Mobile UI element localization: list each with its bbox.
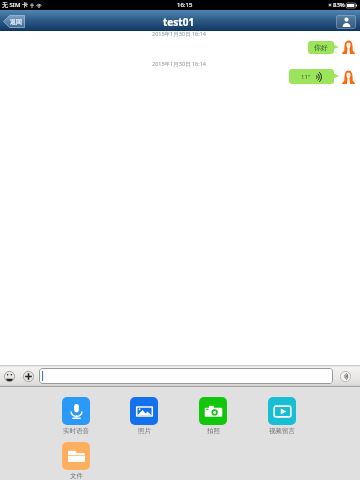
staticText: 拍照: [207, 427, 220, 435]
staticText: 实时语音: [63, 427, 89, 435]
staticText: 83%: [333, 1, 345, 9]
button[interactable]: Emoji: [4, 371, 15, 382]
button[interactable]: 照片: [114, 397, 174, 435]
button[interactable]: 拍照: [183, 397, 243, 435]
button[interactable]: Contacts: [336, 15, 356, 29]
staticText: 你好: [314, 43, 328, 52]
staticText: 11'': [301, 73, 311, 81]
staticText: test01: [163, 15, 195, 29]
staticText: 返回: [10, 18, 22, 26]
button[interactable]: 11'': [289, 69, 334, 84]
staticText: 照片: [138, 427, 151, 435]
button[interactable]: Add attachment: [23, 371, 34, 382]
staticText: 2015年1月30日 16:14: [152, 60, 207, 68]
button[interactable]: 文件: [46, 442, 106, 480]
staticText: 文件: [70, 472, 83, 480]
staticText: 16:15: [177, 1, 193, 9]
button[interactable]: 视频留言: [252, 397, 312, 435]
button[interactable]: [39, 368, 333, 384]
button[interactable]: 返回: [3, 15, 25, 28]
staticText: 无 SIM 卡: [2, 1, 28, 9]
button[interactable]: 你好: [308, 41, 334, 54]
staticText: 视频留言: [269, 427, 295, 435]
button[interactable]: 实时语音: [46, 397, 106, 435]
button[interactable]: Voice message: [340, 371, 351, 382]
staticText: 2015年1月30日 16:14: [152, 30, 207, 38]
